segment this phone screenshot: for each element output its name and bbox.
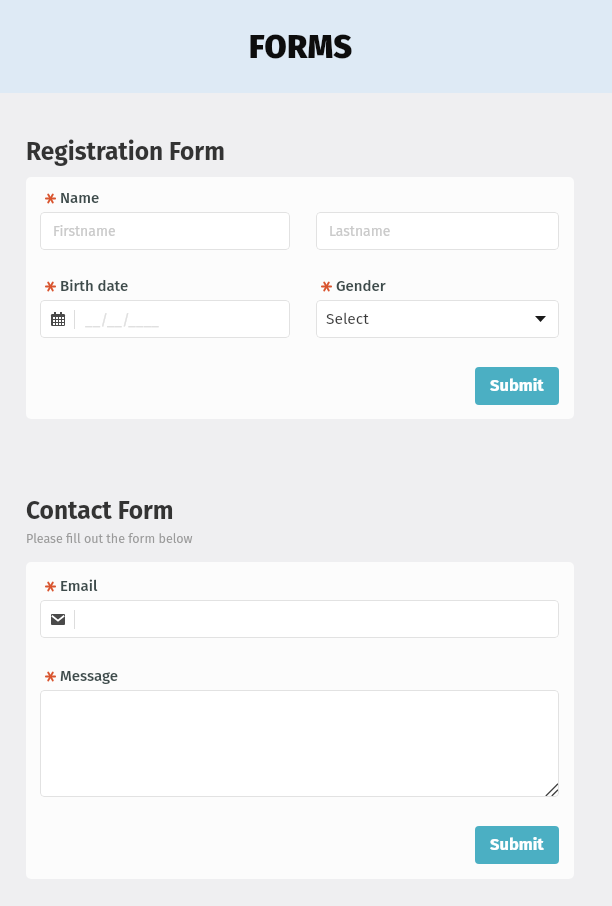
button[interactable]: Submit	[475, 367, 559, 405]
button[interactable]: Email	[40, 600, 559, 638]
staticText: FORMS	[249, 28, 353, 66]
staticText: Submit	[490, 376, 544, 396]
staticText: Email	[60, 577, 98, 595]
other: Pick date	[51, 312, 65, 326]
staticText: Message	[60, 667, 119, 685]
staticText: Registration Form	[26, 137, 225, 166]
button[interactable]: Select	[316, 300, 559, 338]
staticText: Select	[326, 310, 369, 329]
staticText: Contact Form	[26, 496, 174, 525]
button[interactable]: Submit	[475, 826, 559, 864]
other: Email	[51, 614, 65, 625]
staticText: __/__/____	[85, 311, 160, 328]
staticText: Gender	[336, 277, 386, 295]
staticText: Lastname	[329, 223, 391, 240]
button[interactable]: Firstname	[40, 212, 290, 250]
staticText: Firstname	[53, 223, 116, 240]
button[interactable]: Lastname	[316, 212, 559, 250]
button[interactable]	[40, 690, 559, 797]
staticText: Birth date	[60, 277, 129, 295]
staticText: Name	[60, 189, 100, 207]
staticText: Please fill out the form below	[26, 531, 193, 546]
button[interactable]: Pick date	[40, 300, 290, 338]
staticText: Submit	[490, 835, 544, 855]
